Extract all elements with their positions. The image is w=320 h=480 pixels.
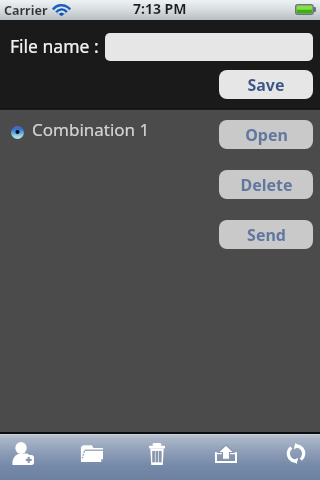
staticText: Combination 1 [32, 118, 150, 141]
button[interactable]: Delete [132, 434, 182, 479]
staticText: Delete [240, 174, 293, 196]
button[interactable]: Refresh [271, 434, 320, 479]
button[interactable]: Export [201, 434, 251, 479]
button[interactable]: Open [219, 120, 313, 149]
button[interactable]: Delete [219, 170, 313, 199]
staticText: Send [247, 224, 286, 246]
staticText: Open [245, 124, 288, 146]
staticText: File name : [10, 34, 99, 58]
staticText: Carrier [4, 2, 48, 19]
button[interactable]: Combination 1 [0, 113, 320, 149]
button[interactable]: Send [219, 220, 313, 249]
staticText: Save [247, 74, 285, 96]
staticText: 7:13 PM [133, 0, 187, 18]
button[interactable]: Open folder [66, 434, 116, 479]
button[interactable]: Save [219, 70, 313, 99]
button[interactable]: Add contact [0, 434, 48, 479]
button[interactable] [105, 33, 313, 61]
